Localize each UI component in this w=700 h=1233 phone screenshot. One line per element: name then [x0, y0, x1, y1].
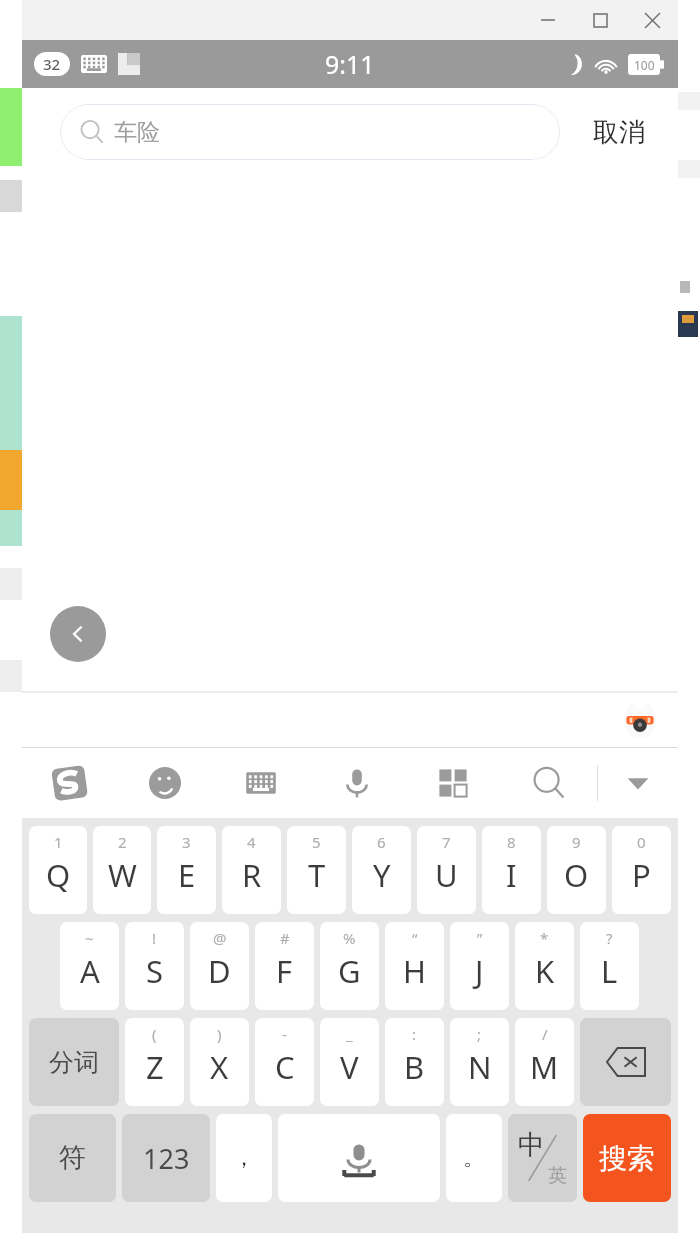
staticText: W	[108, 854, 137, 896]
button[interactable]: Backspace	[580, 1018, 671, 1106]
button[interactable]: 5	[287, 826, 346, 914]
staticText: G	[338, 950, 361, 992]
button[interactable]: 分词	[29, 1018, 119, 1106]
staticText: H	[403, 950, 426, 992]
button[interactable]: -	[255, 1018, 314, 1106]
staticText: 6	[377, 832, 386, 852]
staticText: U	[435, 854, 458, 896]
staticText: 100	[634, 57, 655, 73]
button[interactable]: *	[515, 922, 574, 1010]
staticText: 8	[507, 832, 516, 852]
button[interactable]: Voice input	[309, 748, 405, 818]
staticText: #	[280, 928, 290, 948]
staticText: _	[346, 1024, 353, 1044]
staticText: I	[506, 854, 517, 896]
staticText: 32	[43, 54, 61, 74]
staticText: ?	[606, 928, 613, 948]
staticText: !	[152, 928, 157, 948]
button[interactable]: Space	[278, 1114, 440, 1202]
button[interactable]: Close	[626, 0, 678, 40]
staticText: 0	[637, 832, 646, 852]
button[interactable]: Keyboard layout	[213, 748, 309, 818]
button[interactable]: “	[385, 922, 444, 1010]
button[interactable]: _	[320, 1018, 379, 1106]
staticText: ;	[477, 1024, 482, 1044]
button[interactable]: 6	[352, 826, 411, 914]
staticText: 符	[59, 1141, 86, 1175]
staticText: B	[404, 1046, 425, 1088]
button[interactable]: 取消	[560, 88, 678, 176]
staticText: 分词	[49, 1047, 99, 1078]
staticText: -	[282, 1024, 287, 1044]
button[interactable]: ，	[216, 1114, 272, 1202]
staticText: S	[146, 950, 164, 992]
button[interactable]: 搜索	[583, 1114, 671, 1202]
staticText: /	[542, 1024, 548, 1044]
button[interactable]: ”	[450, 922, 509, 1010]
staticText: Q	[46, 854, 71, 896]
button[interactable]: 。	[446, 1114, 502, 1202]
button[interactable]: Minimize	[522, 0, 574, 40]
staticText: 搜索	[599, 1141, 655, 1176]
button[interactable]: Maximize	[574, 0, 626, 40]
staticText: 5	[312, 832, 321, 852]
button[interactable]: 123	[122, 1114, 210, 1202]
staticText: Z	[146, 1046, 164, 1088]
button[interactable]: 4	[222, 826, 281, 914]
staticText: V	[340, 1046, 359, 1088]
button[interactable]: 0	[612, 826, 671, 914]
staticText: ，	[233, 1144, 255, 1172]
button[interactable]: )	[190, 1018, 249, 1106]
staticText: F	[276, 950, 293, 992]
staticText: P	[632, 854, 651, 896]
button[interactable]: ~	[60, 922, 119, 1010]
staticText: (	[152, 1024, 157, 1044]
button[interactable]: 车险	[60, 104, 560, 160]
staticText: J	[475, 950, 484, 992]
staticText: @	[213, 928, 227, 948]
button[interactable]: ;	[450, 1018, 509, 1106]
button[interactable]: /	[515, 1018, 574, 1106]
staticText: *	[540, 928, 549, 948]
button[interactable]: @	[190, 922, 249, 1010]
button[interactable]: (	[125, 1018, 184, 1106]
staticText: %	[343, 928, 356, 948]
button[interactable]: Back	[50, 606, 106, 662]
staticText: 1	[54, 832, 63, 852]
staticText: T	[308, 854, 326, 896]
button[interactable]: Sogou input	[22, 748, 117, 818]
button[interactable]: More tools	[405, 748, 501, 818]
staticText: ”	[477, 928, 483, 948]
staticText: 中	[518, 1128, 545, 1162]
button[interactable]: %	[320, 922, 379, 1010]
button[interactable]: 3	[157, 826, 216, 914]
staticText: K	[535, 950, 555, 992]
staticText: 取消	[593, 116, 645, 149]
staticText: 9:11	[325, 47, 375, 81]
button[interactable]: :	[385, 1018, 444, 1106]
button[interactable]: 1	[29, 826, 87, 914]
staticText: 3	[182, 832, 191, 852]
staticText: :	[412, 1024, 417, 1044]
staticText: E	[178, 854, 196, 896]
staticText: 车险	[114, 118, 160, 147]
button[interactable]: 7	[417, 826, 476, 914]
button[interactable]: Search	[501, 748, 597, 818]
staticText: X	[210, 1046, 229, 1088]
button[interactable]: Assistant	[618, 698, 662, 742]
button[interactable]: 符	[29, 1114, 116, 1202]
button[interactable]: Emoji	[117, 748, 213, 818]
button[interactable]: 2	[93, 826, 151, 914]
staticText: “	[412, 928, 418, 948]
button[interactable]: Chinese English toggle	[508, 1114, 577, 1202]
staticText: 。	[463, 1144, 485, 1172]
button[interactable]: ?	[580, 922, 639, 1010]
staticText: 英	[548, 1164, 567, 1188]
staticText: Y	[373, 854, 391, 896]
button[interactable]: Hide keyboard	[598, 748, 678, 818]
button[interactable]: 8	[482, 826, 541, 914]
button[interactable]: #	[255, 922, 314, 1010]
staticText: M	[530, 1046, 559, 1088]
button[interactable]: 9	[547, 826, 606, 914]
button[interactable]: !	[125, 922, 184, 1010]
